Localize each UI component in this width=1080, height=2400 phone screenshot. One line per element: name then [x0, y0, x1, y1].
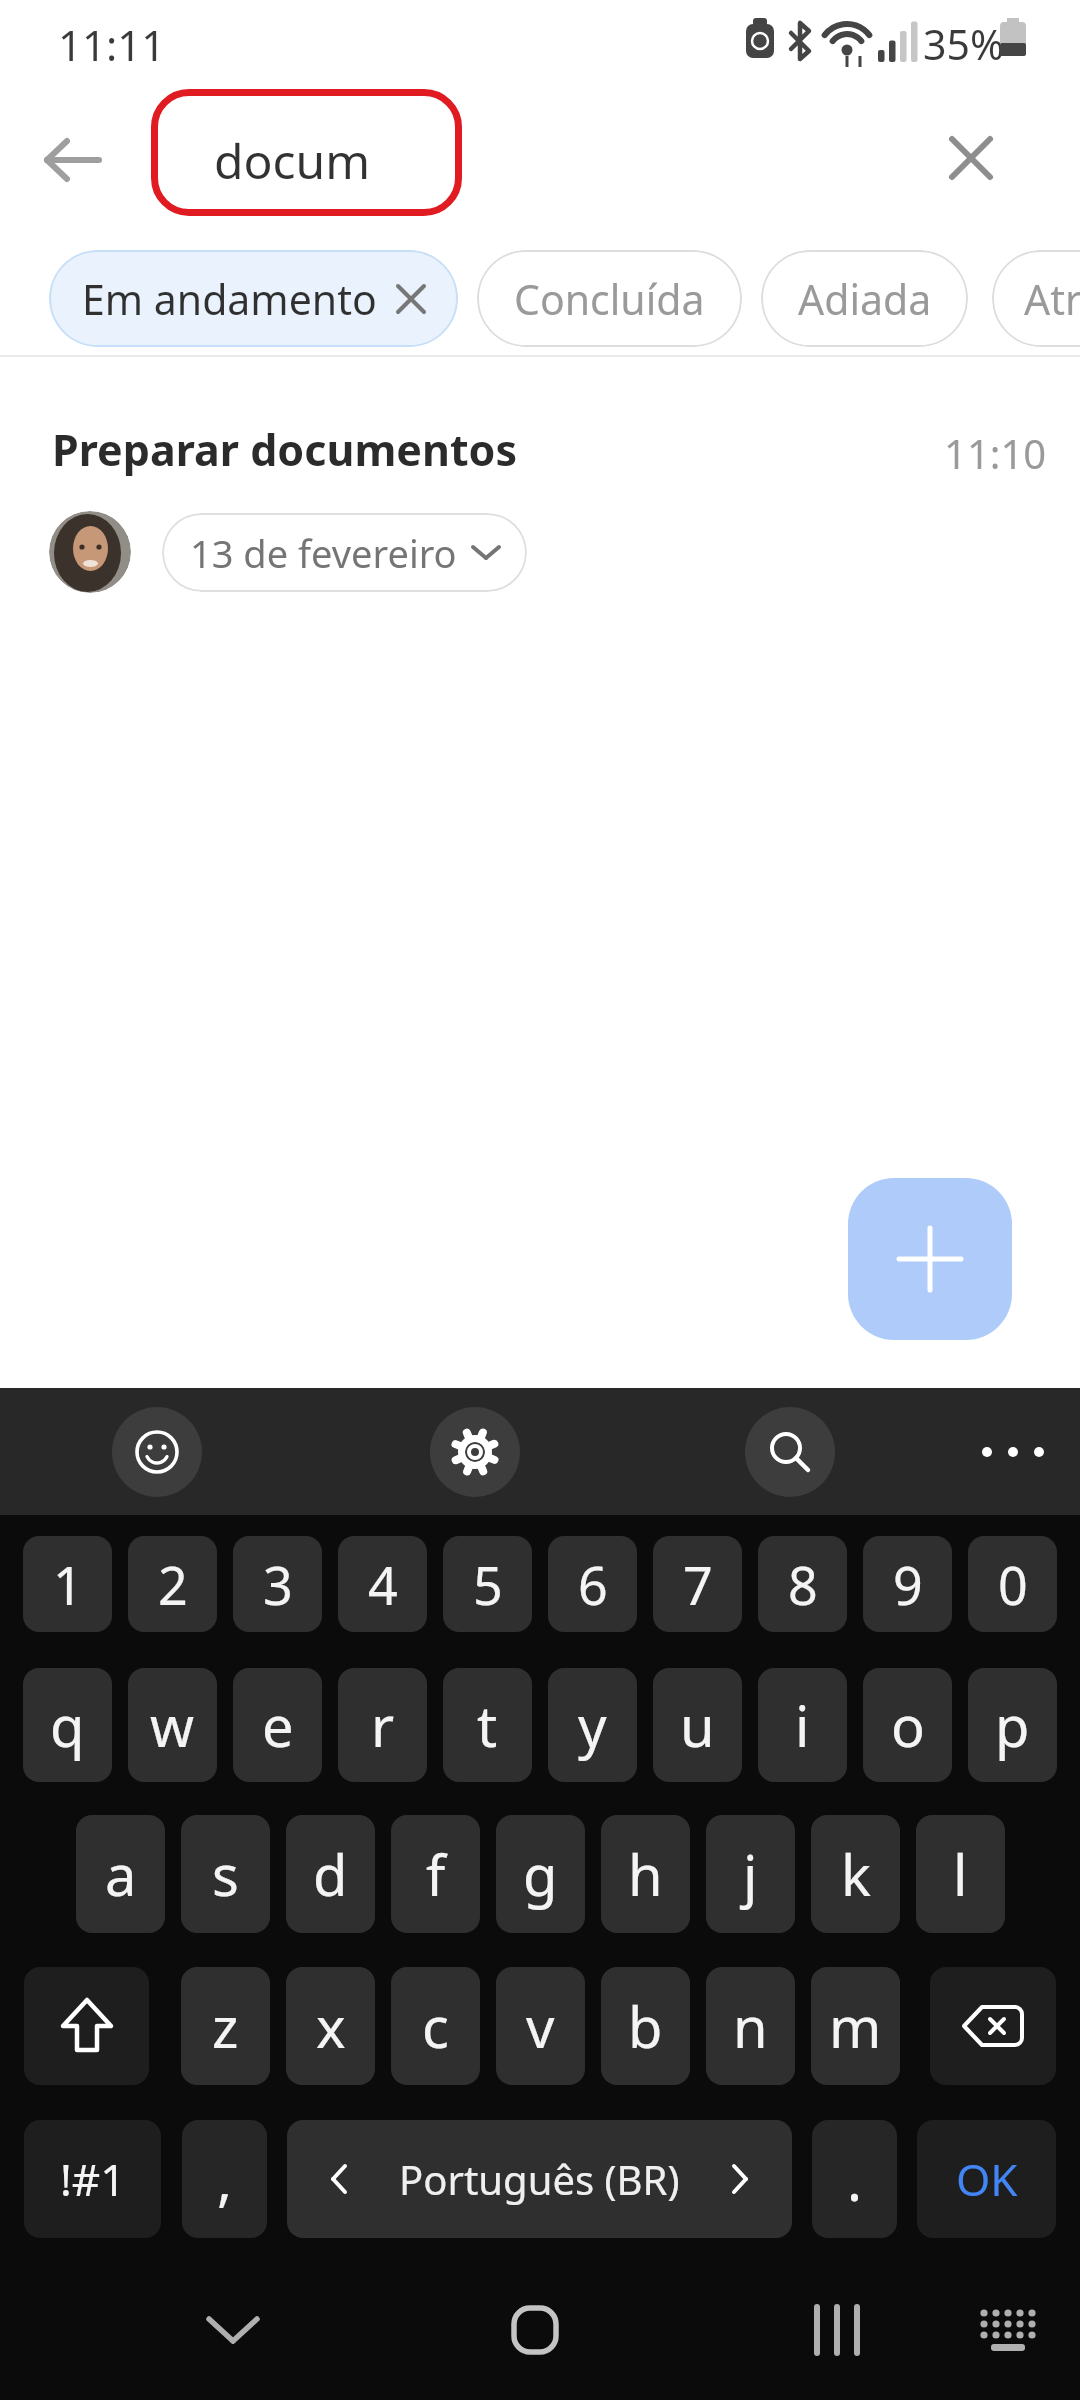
staticText: 4 — [368, 1549, 398, 1620]
button[interactable]: Atra — [992, 250, 1080, 347]
staticText: !#1 — [60, 2149, 126, 2209]
staticText: Atra — [1024, 271, 1080, 327]
button[interactable]: Preparar documentos — [0, 400, 1080, 640]
button[interactable] — [745, 1407, 835, 1497]
button[interactable]: f — [391, 1815, 480, 1933]
button[interactable] — [968, 1407, 1058, 1497]
button[interactable] — [848, 1178, 1012, 1340]
staticText: i — [795, 1687, 810, 1763]
staticText: x — [316, 1988, 346, 2064]
staticText: 2 — [158, 1549, 188, 1620]
staticText: s — [212, 1836, 239, 1912]
button[interactable]: . — [812, 2120, 897, 2238]
button[interactable] — [930, 1967, 1056, 2085]
button[interactable] — [49, 511, 131, 593]
staticText: j — [743, 1836, 758, 1912]
staticText: 5 — [473, 1549, 503, 1620]
button[interactable]: o — [863, 1668, 952, 1782]
button[interactable]: 4 — [338, 1536, 427, 1632]
button[interactable] — [24, 1967, 149, 2085]
button[interactable]: Em andamento — [49, 250, 458, 347]
staticText: b — [628, 1988, 663, 2064]
staticText: a — [105, 1836, 137, 1912]
button[interactable]: 7 — [653, 1536, 742, 1632]
button[interactable]: 2 — [128, 1536, 217, 1632]
staticText: z — [212, 1988, 239, 2064]
button[interactable] — [938, 126, 1004, 190]
button[interactable]: z — [181, 1967, 270, 2085]
staticText: r — [371, 1687, 395, 1763]
staticText: y — [578, 1687, 607, 1763]
staticText: k — [841, 1836, 871, 1912]
button[interactable]: w — [128, 1668, 217, 1782]
button[interactable]: l — [916, 1815, 1005, 1933]
staticText: v — [526, 1988, 555, 2064]
button[interactable] — [112, 1407, 202, 1497]
button[interactable]: 6 — [548, 1536, 637, 1632]
button[interactable]: 1 — [23, 1536, 112, 1632]
button[interactable]: b — [601, 1967, 690, 2085]
button[interactable]: a — [76, 1815, 165, 1933]
button[interactable]: 8 — [758, 1536, 847, 1632]
button[interactable]: 13 de fevereiro — [162, 513, 527, 592]
button[interactable]: OK — [917, 2120, 1056, 2238]
button[interactable]: Concluída — [477, 250, 742, 347]
button[interactable]: r — [338, 1668, 427, 1782]
button[interactable]: j — [706, 1815, 795, 1933]
button[interactable]: q — [23, 1668, 112, 1782]
staticText: 0 — [998, 1549, 1028, 1620]
staticText: 1 — [53, 1549, 83, 1620]
button[interactable]: x — [286, 1967, 375, 2085]
staticText: l — [953, 1836, 968, 1912]
button[interactable]: t — [443, 1668, 532, 1782]
staticText: 35% — [923, 16, 1004, 72]
button[interactable]: Português (BR) — [287, 2120, 792, 2238]
button[interactable]: e — [233, 1668, 322, 1782]
button[interactable]: , — [182, 2120, 267, 2238]
staticText: g — [523, 1836, 558, 1912]
button[interactable] — [430, 1407, 520, 1497]
staticText: Concluída — [514, 271, 705, 327]
button[interactable]: p — [968, 1668, 1057, 1782]
button[interactable]: c — [391, 1967, 480, 2085]
staticText: p — [995, 1687, 1030, 1763]
staticText: , — [217, 2141, 233, 2217]
button[interactable]: n — [706, 1967, 795, 2085]
staticText: e — [262, 1687, 294, 1763]
button[interactable]: d — [286, 1815, 375, 1933]
button[interactable]: i — [758, 1668, 847, 1782]
button[interactable]: 5 — [443, 1536, 532, 1632]
button[interactable]: s — [181, 1815, 270, 1933]
button[interactable]: v — [496, 1967, 585, 2085]
staticText: f — [426, 1836, 446, 1912]
button[interactable]: u — [653, 1668, 742, 1782]
button[interactable]: g — [496, 1815, 585, 1933]
button[interactable]: m — [811, 1967, 900, 2085]
button[interactable] — [787, 2290, 887, 2370]
staticText: 8 — [788, 1549, 818, 1620]
staticText: 13 de fevereiro — [190, 527, 457, 579]
staticText: 11:11 — [58, 16, 166, 73]
button[interactable]: 9 — [863, 1536, 952, 1632]
staticText: n — [733, 1988, 768, 2064]
staticText: h — [628, 1836, 663, 1912]
staticText: m — [829, 1988, 882, 2064]
button[interactable] — [485, 2290, 585, 2370]
button[interactable]: y — [548, 1668, 637, 1782]
staticText: . — [847, 2141, 863, 2217]
staticText: c — [422, 1988, 449, 2064]
button[interactable]: Adiada — [761, 250, 968, 347]
button[interactable]: h — [601, 1815, 690, 1933]
button[interactable] — [958, 2290, 1058, 2370]
button[interactable]: docum — [214, 128, 371, 193]
button[interactable] — [183, 2290, 283, 2370]
button[interactable]: 3 — [233, 1536, 322, 1632]
staticText: OK — [956, 2149, 1018, 2209]
button[interactable]: !#1 — [24, 2120, 161, 2238]
staticText: u — [680, 1687, 715, 1763]
button[interactable]: 0 — [968, 1536, 1057, 1632]
button[interactable]: k — [811, 1815, 900, 1933]
staticText: 9 — [893, 1549, 923, 1620]
button[interactable] — [40, 128, 106, 192]
staticText: 6 — [578, 1549, 608, 1620]
